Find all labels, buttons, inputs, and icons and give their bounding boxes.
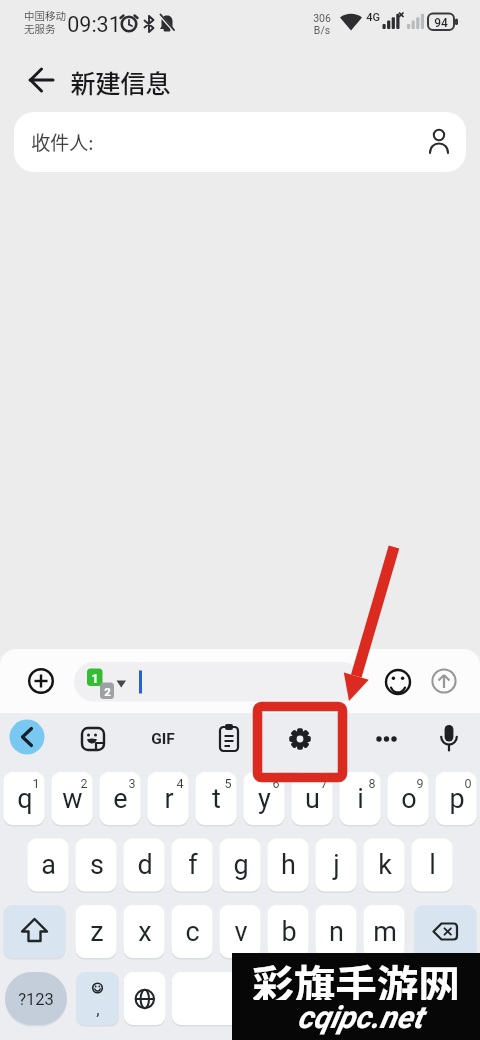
staticText: h: [281, 849, 296, 881]
staticText: 0: [464, 776, 472, 791]
staticText: z: [90, 916, 104, 948]
staticText: s: [90, 849, 104, 881]
staticText: m: [373, 916, 397, 948]
staticText: 6: [272, 776, 280, 791]
staticText: e: [113, 783, 128, 815]
staticText: l: [429, 849, 436, 881]
staticText: 1: [32, 776, 40, 791]
staticText: 3: [128, 776, 136, 791]
staticText: o: [401, 783, 417, 815]
staticText: y: [258, 783, 271, 815]
staticText: 中国移动 无服务: [24, 8, 66, 36]
staticText: t: [212, 783, 221, 815]
staticText: c: [185, 916, 200, 948]
staticText: 8: [368, 776, 376, 791]
staticText: p: [449, 783, 465, 815]
staticText: n: [329, 916, 344, 948]
staticText: 2: [104, 685, 111, 698]
staticText: 1: [91, 671, 99, 686]
staticText: ?123: [18, 990, 54, 1009]
staticText: x: [138, 916, 152, 948]
staticText: v: [234, 916, 248, 948]
staticText: 2: [80, 776, 88, 791]
staticText: q: [17, 783, 33, 815]
staticText: GIF: [151, 730, 175, 748]
staticText: d: [137, 849, 153, 881]
staticText: 09:31: [67, 12, 121, 37]
staticText: w: [62, 783, 83, 815]
staticText: 5: [224, 776, 232, 791]
staticText: 4: [176, 776, 184, 791]
staticText: j: [333, 849, 340, 881]
staticText: 94: [434, 16, 448, 30]
staticText: 收件人:: [31, 128, 94, 156]
staticText: r: [164, 783, 174, 815]
staticText: 7: [320, 776, 328, 791]
staticText: b: [281, 916, 297, 948]
staticText: a: [41, 849, 56, 881]
staticText: 彩旗手游网: [252, 953, 460, 1000]
staticText: ,: [96, 999, 100, 1019]
staticText: k: [378, 849, 392, 881]
staticText: f: [188, 849, 198, 881]
staticText: 4G: [366, 11, 380, 24]
staticText: 新建信息: [70, 64, 171, 96]
staticText: cqipc.net: [297, 999, 423, 1035]
staticText: i: [357, 783, 364, 815]
staticText: u: [305, 783, 320, 815]
staticText: 9: [416, 776, 424, 791]
staticText: 306 B/s: [313, 12, 331, 37]
staticText: g: [233, 849, 249, 881]
